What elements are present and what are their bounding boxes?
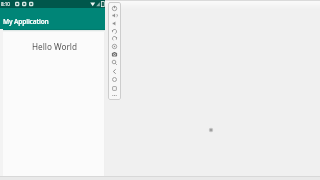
staticText: 8:10 <box>1 1 10 7</box>
button[interactable] <box>109 85 120 92</box>
button[interactable] <box>109 20 120 27</box>
staticText: My Application <box>3 17 49 26</box>
button[interactable] <box>109 35 120 42</box>
button[interactable]: My Application <box>0 8 105 30</box>
button[interactable] <box>109 12 120 19</box>
button[interactable] <box>109 51 120 58</box>
staticText: Hello World <box>32 41 77 52</box>
button[interactable] <box>109 5 120 12</box>
button[interactable] <box>109 68 120 75</box>
button[interactable] <box>109 28 120 35</box>
button[interactable] <box>109 76 120 83</box>
button[interactable] <box>109 43 120 50</box>
button[interactable] <box>109 59 120 66</box>
button[interactable] <box>109 92 120 99</box>
